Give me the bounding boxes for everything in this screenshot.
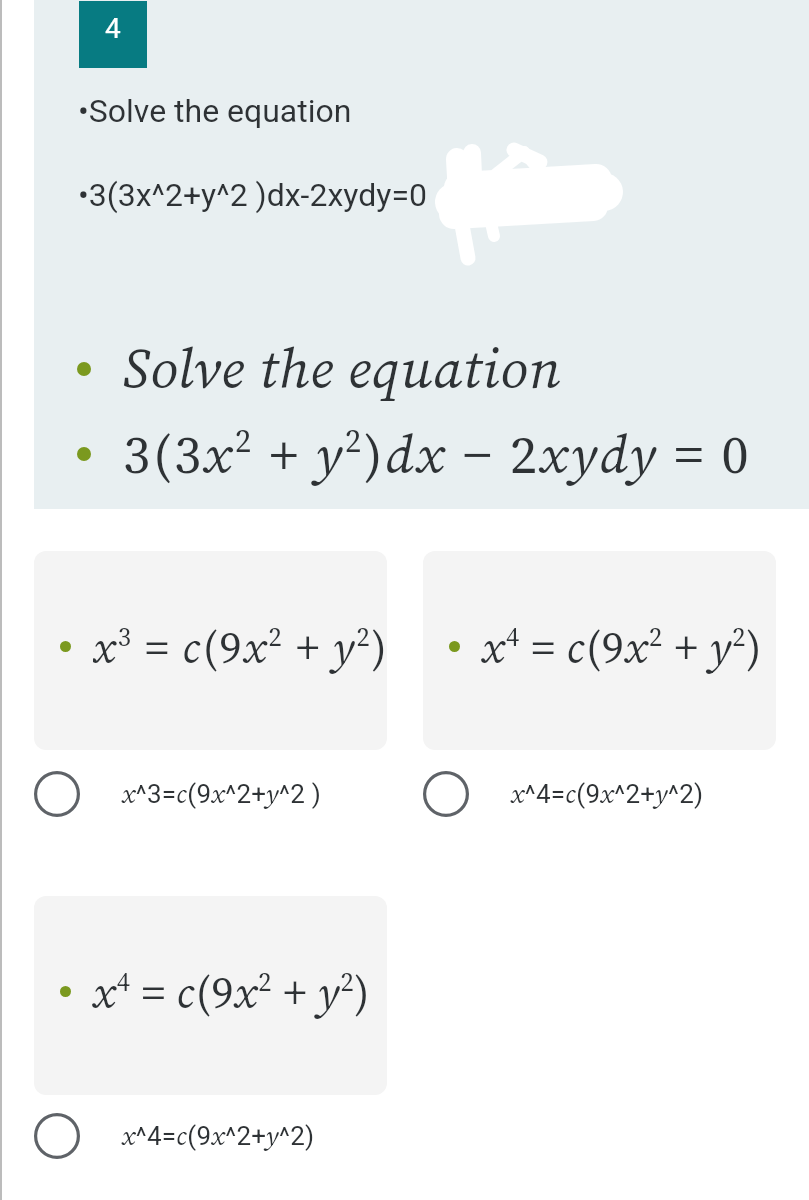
staticText: x^4=c(9x^2+y^2) bbox=[511, 776, 704, 812]
staticText: x3 = c(9x2 + y2) bbox=[93, 617, 387, 677]
button[interactable]: x3 = c(9x2 + y2) bbox=[34, 551, 387, 750]
staticText: x4 = c(9x2 + y2) bbox=[482, 617, 763, 677]
staticText: Solve the equation bbox=[123, 330, 562, 407]
staticText: x^3=c(9x^2+y^2 ) bbox=[122, 776, 322, 812]
button[interactable]: x^4=c(9x^2+y^2) bbox=[423, 771, 776, 817]
staticText: 3(3x2 + y2)dx − 2xydy = 0 bbox=[123, 417, 752, 491]
staticText: •Solve the equation bbox=[78, 92, 352, 130]
button[interactable]: x^3=c(9x^2+y^2 ) bbox=[34, 771, 387, 817]
button[interactable]: x^4=c(9x^2+y^2) bbox=[34, 1113, 387, 1159]
staticText: •3(3x^2+y^2 )dx-2xydy=0 bbox=[78, 176, 427, 214]
staticText: x^4=c(9x^2+y^2) bbox=[122, 1118, 315, 1154]
staticText: 4 bbox=[105, 12, 121, 45]
button[interactable]: x4 = c(9x2 + y2) bbox=[34, 896, 387, 1095]
staticText: x4 = c(9x2 + y2) bbox=[93, 962, 371, 1022]
button[interactable]: x4 = c(9x2 + y2) bbox=[423, 551, 776, 750]
